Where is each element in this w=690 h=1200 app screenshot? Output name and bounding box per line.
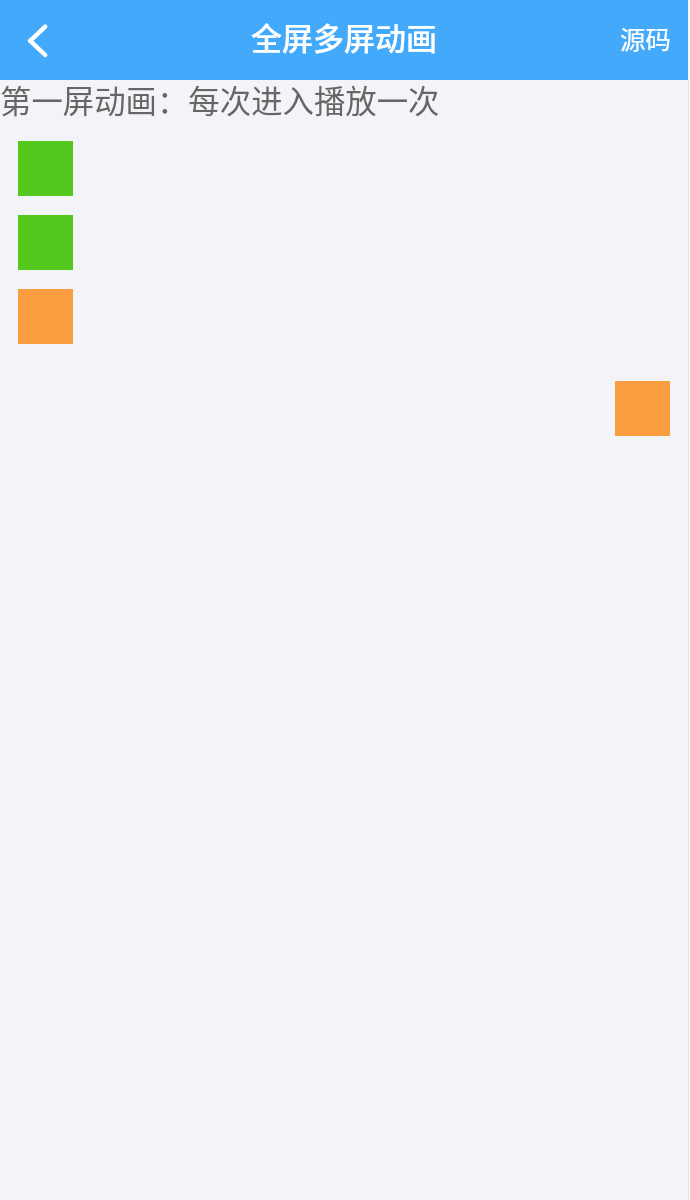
button[interactable]: Back: [0, 0, 76, 80]
staticText: 第一屏动画：每次进入播放一次: [0, 77, 440, 122]
staticText: 源码: [620, 20, 671, 57]
staticText: 全屏多屏动画: [251, 14, 437, 59]
button[interactable]: 源码: [600, 8, 688, 73]
